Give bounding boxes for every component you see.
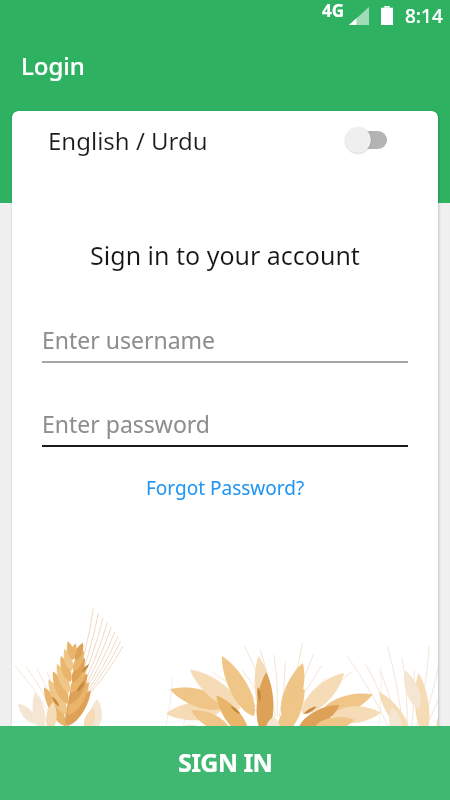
staticText: English / Urdu <box>48 124 208 157</box>
staticText: SIGN IN <box>178 745 273 779</box>
button[interactable]: Enter password <box>42 408 408 447</box>
button[interactable]: Enter username <box>42 324 408 363</box>
button[interactable]: English / Urdu <box>12 111 438 169</box>
staticText: Enter username <box>42 324 216 355</box>
staticText: Sign in to your account <box>12 238 438 272</box>
staticText: Enter password <box>42 408 211 439</box>
button[interactable]: SIGN IN <box>0 726 450 800</box>
staticText: 4G <box>322 0 345 22</box>
staticText: 8:14 <box>405 3 443 29</box>
staticText: Login <box>21 49 85 82</box>
button[interactable]: Forgot Password? <box>140 469 311 507</box>
button[interactable]: Toggle language English / Urdu <box>345 126 387 154</box>
